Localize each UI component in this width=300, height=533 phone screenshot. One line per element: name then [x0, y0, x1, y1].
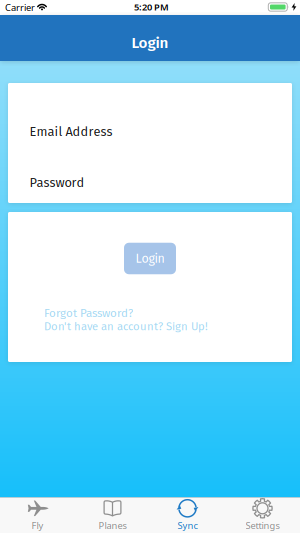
staticText: Carrier: [5, 1, 35, 14]
staticText: Password: [29, 175, 84, 190]
staticText: Planes: [98, 519, 126, 532]
button[interactable]: Sync: [150, 497, 225, 533]
staticText: Settings: [245, 519, 279, 532]
button[interactable]: Forgot Password?: [8, 306, 292, 320]
button[interactable]: Email Address: [8, 107, 292, 157]
button[interactable]: Settings: [225, 497, 300, 533]
button[interactable]: Don't have an account? Sign Up!: [8, 319, 292, 333]
button[interactable]: Fly: [0, 497, 75, 533]
staticText: 5:20 PM: [134, 1, 169, 13]
staticText: Fly: [31, 519, 43, 532]
staticText: Sync: [177, 519, 197, 532]
staticText: Don't have an account? Sign Up!: [44, 320, 208, 333]
button[interactable]: Login: [124, 243, 176, 274]
staticText: Login: [135, 251, 164, 266]
button[interactable]: Password: [8, 158, 292, 208]
staticText: Forgot Password?: [44, 306, 133, 320]
staticText: Login: [131, 34, 168, 52]
button[interactable]: Planes: [75, 497, 150, 533]
staticText: Email Address: [29, 124, 112, 139]
